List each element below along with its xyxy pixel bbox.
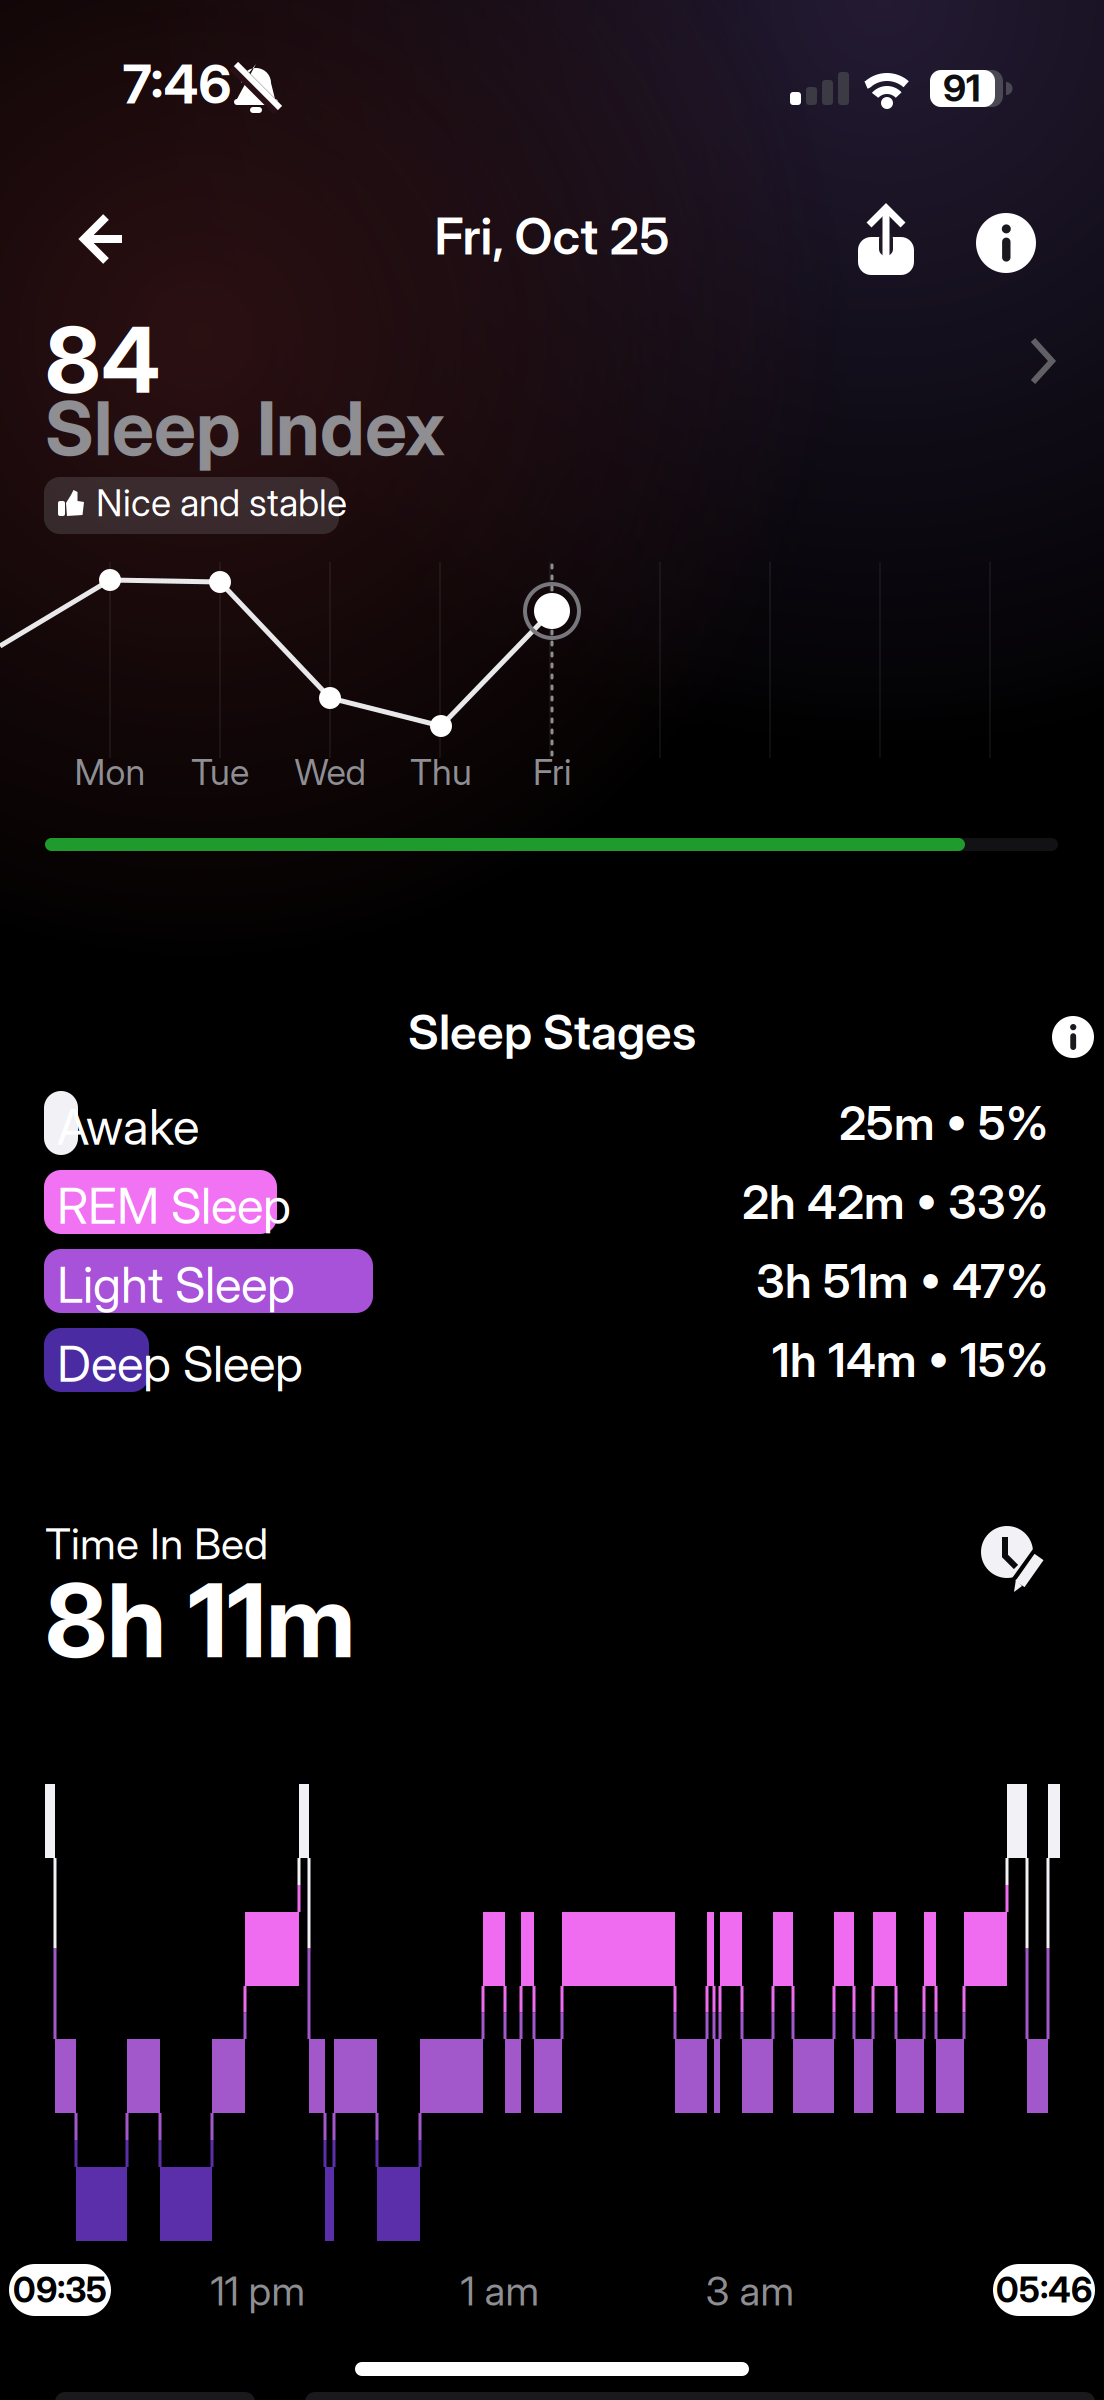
staticText: 25m • 5%: [839, 1095, 1048, 1151]
staticText: 2h 42m • 33%: [742, 1174, 1048, 1230]
staticText: 1 am: [460, 2267, 539, 2315]
staticText: 09:35: [13, 2269, 107, 2311]
staticText: Sleep Index: [45, 383, 445, 473]
staticText: 91: [943, 65, 981, 111]
staticText: Sleep Stages: [408, 1003, 696, 1061]
staticText: Tue: [191, 750, 249, 794]
staticText: 8h 11m: [45, 1559, 356, 1682]
staticText: Fri, Oct 25: [434, 205, 669, 267]
staticText: Fri: [533, 750, 571, 794]
staticText: REM Sleep: [57, 1176, 291, 1236]
staticText: Awake: [57, 1097, 199, 1157]
staticText: 1h 14m • 15%: [772, 1332, 1048, 1388]
staticText: 7:46: [122, 52, 231, 116]
staticText: Light Sleep: [57, 1255, 295, 1315]
staticText: Time In Bed: [45, 1518, 268, 1570]
staticText: Nice and stable: [96, 480, 347, 525]
staticText: 05:46: [996, 2269, 1092, 2311]
staticText: 11 pm: [210, 2267, 305, 2315]
staticText: Mon: [74, 750, 145, 794]
staticText: 3 am: [705, 2267, 794, 2315]
staticText: 84: [45, 305, 161, 415]
staticText: Wed: [294, 750, 365, 794]
staticText: Deep Sleep: [57, 1334, 303, 1394]
button[interactable]: 84: [0, 0, 1104, 470]
staticText: Thu: [410, 750, 472, 794]
staticText: 3h 51m • 47%: [756, 1253, 1048, 1309]
